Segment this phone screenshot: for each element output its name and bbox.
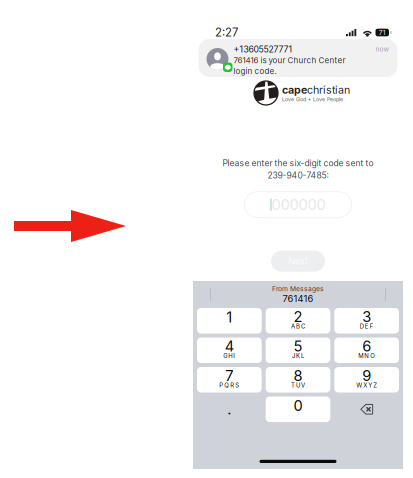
staticText: 761416 is your Church Center (233, 55, 345, 65)
button[interactable]: 7 (197, 367, 262, 392)
button[interactable]: Next (271, 251, 325, 272)
button[interactable]: 1 (197, 308, 262, 333)
staticText: D E F (360, 323, 374, 330)
staticText: P Q R S (219, 382, 239, 389)
button[interactable]: 5 (266, 337, 330, 363)
button[interactable]: . (197, 396, 262, 422)
staticText: 6 (362, 337, 371, 355)
button[interactable]: 3 (334, 308, 399, 333)
button[interactable]: 0 (266, 396, 330, 422)
staticText: 9 (362, 367, 371, 385)
staticText: J K L (292, 352, 304, 359)
staticText: 239-940-7485: (267, 170, 328, 181)
staticText: 8 (293, 367, 302, 385)
staticText: 1 (226, 308, 232, 326)
staticText: login code. (233, 66, 276, 76)
staticText: W X Y Z (356, 382, 377, 389)
button[interactable]: 2 (266, 308, 330, 333)
staticText: Please enter the six-digit code sent to (222, 158, 373, 168)
button[interactable]: 9 (334, 367, 399, 392)
staticText: 7 (225, 367, 233, 385)
staticText: . (227, 400, 231, 418)
staticText: capechristian (282, 83, 350, 96)
staticText: Love God • Love People (282, 96, 343, 103)
staticText: 2:27 (215, 26, 238, 39)
button[interactable]: 4 (197, 337, 262, 363)
staticText: 000000 (272, 196, 326, 213)
staticText: +13605527771 (233, 44, 292, 54)
button[interactable]: 8 (266, 367, 330, 392)
button[interactable]: 6 (334, 337, 399, 363)
staticText: From Messages (272, 285, 324, 293)
button[interactable]: Delete (334, 396, 399, 422)
staticText: G H I (223, 352, 235, 359)
staticText: 0 (293, 397, 302, 415)
staticText: 5 (293, 337, 302, 355)
staticText: Next (288, 255, 308, 267)
staticText: 71 (379, 28, 386, 37)
staticText: 4 (225, 337, 234, 355)
staticText: 761416 (282, 293, 313, 304)
staticText: A B C (291, 323, 305, 330)
staticText: 3 (362, 308, 371, 326)
staticText: now (375, 45, 388, 53)
staticText: M N O (358, 352, 375, 359)
staticText: T U V (291, 382, 305, 389)
staticText: 2 (293, 308, 302, 326)
